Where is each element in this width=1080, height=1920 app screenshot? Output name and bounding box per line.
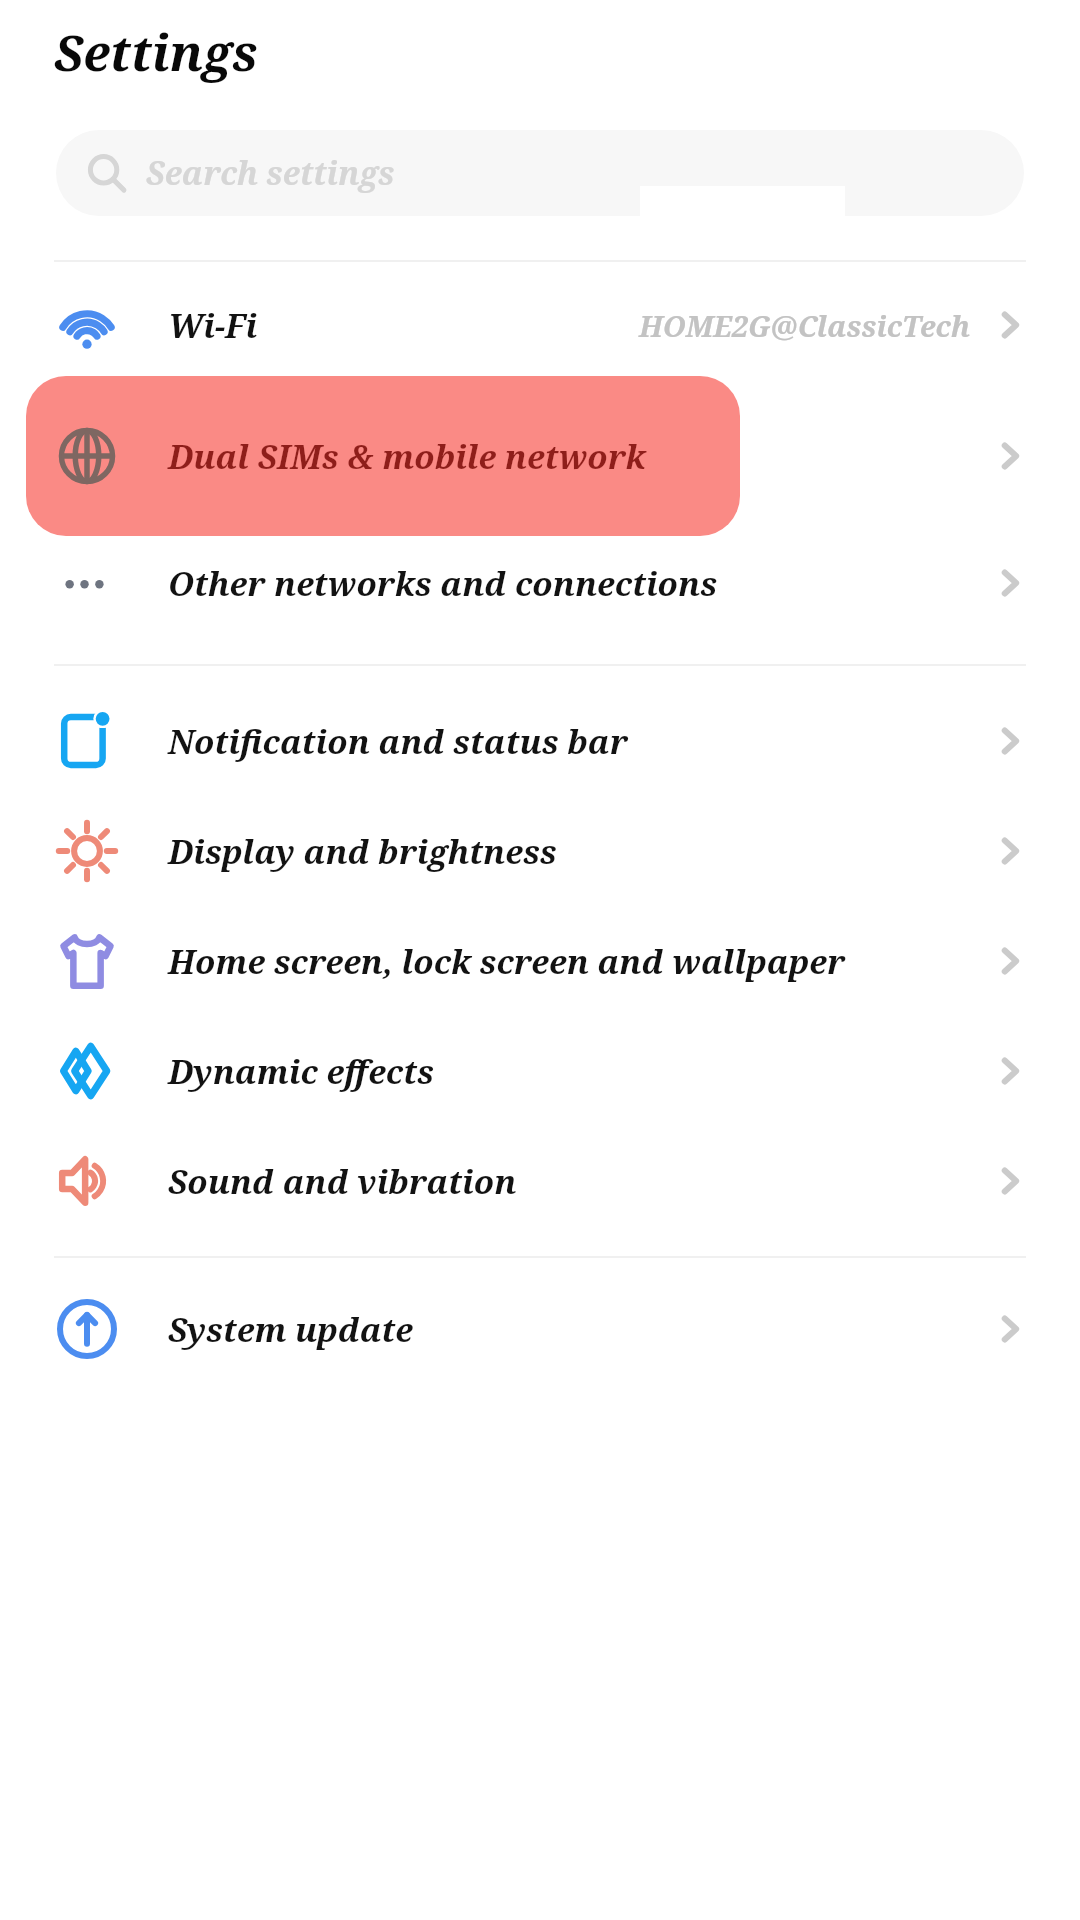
staticText: Other networks and connections xyxy=(168,561,718,606)
button[interactable]: Sound and vibration xyxy=(0,1144,1080,1218)
other: System update xyxy=(57,1299,117,1359)
staticText: Sound and vibration xyxy=(168,1159,517,1204)
other: Dynamic effects xyxy=(56,1040,118,1102)
other: Notification and status bar xyxy=(57,711,117,771)
staticText: Search settings xyxy=(146,151,395,195)
button[interactable]: System update xyxy=(0,1292,1080,1366)
staticText: Dual SIMs & mobile network xyxy=(168,434,646,479)
button[interactable]: Other networks xyxy=(0,546,1080,620)
staticText: Display and brightness xyxy=(168,829,557,874)
staticText: Wi-Fi xyxy=(168,303,258,348)
button[interactable]: Notification and status bar xyxy=(0,704,1080,778)
staticText: Dynamic effects xyxy=(168,1049,434,1094)
other: Display and brightness xyxy=(57,821,117,881)
button[interactable]: Mobile network xyxy=(26,376,740,536)
button[interactable]: Wi-Fi xyxy=(0,288,1080,362)
other: Home screen and wallpaper xyxy=(56,930,118,992)
staticText: HOME2G@ClassicTech xyxy=(639,306,970,345)
staticText: Settings xyxy=(54,18,258,86)
other: Wi-Fi xyxy=(56,294,118,356)
staticText: Home screen, lock screen and wallpaper xyxy=(168,939,846,984)
button[interactable]: Search settings xyxy=(56,130,1024,216)
button[interactable]: Home screen and wallpaper xyxy=(0,924,1080,998)
other: Mobile network xyxy=(58,427,116,485)
button[interactable]: Dynamic effects xyxy=(0,1034,1080,1108)
button[interactable]: Display and brightness xyxy=(0,814,1080,888)
other: Sound and vibration xyxy=(56,1150,118,1212)
staticText: System update xyxy=(168,1307,414,1352)
other: Other networks xyxy=(56,552,118,614)
staticText: Notification and status bar xyxy=(168,719,628,764)
